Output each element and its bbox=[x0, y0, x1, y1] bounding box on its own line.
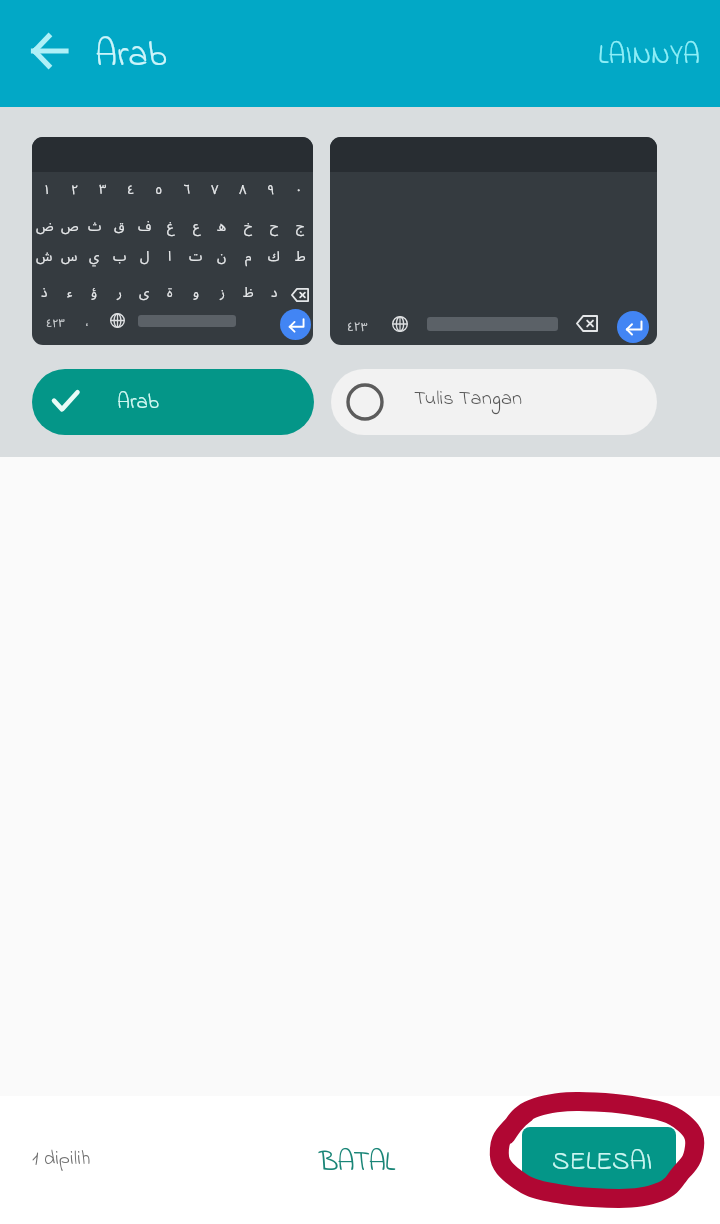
staticText: Arab bbox=[95, 30, 167, 83]
staticText: خ bbox=[244, 212, 253, 241]
staticText: ف bbox=[138, 212, 152, 241]
staticText: ٤ bbox=[127, 176, 135, 203]
staticText: ٤٢٣ bbox=[46, 312, 65, 335]
staticText: ٦ bbox=[183, 176, 191, 203]
staticText: BATAL bbox=[319, 1142, 394, 1184]
staticText: ٧ bbox=[211, 176, 219, 203]
staticText: ش bbox=[36, 242, 53, 271]
button[interactable]: SELESAI bbox=[522, 1127, 676, 1191]
staticText: ع bbox=[193, 212, 200, 241]
button[interactable]: Back bbox=[16, 18, 82, 84]
staticText: ك bbox=[268, 242, 280, 271]
staticText: ء bbox=[67, 278, 73, 307]
staticText: ل bbox=[140, 242, 150, 271]
staticText: ه bbox=[217, 212, 227, 241]
staticText: ى bbox=[139, 278, 150, 307]
staticText: ح bbox=[270, 212, 279, 241]
staticText: د bbox=[271, 278, 278, 307]
staticText: ث bbox=[88, 212, 102, 241]
staticText: ط bbox=[295, 242, 306, 271]
staticText: LAINNYA bbox=[598, 36, 701, 77]
staticText: ٢ bbox=[71, 176, 79, 203]
staticText: ٣ bbox=[99, 176, 107, 203]
staticText: م bbox=[245, 242, 252, 271]
staticText: ظ bbox=[243, 278, 254, 307]
staticText: ٥ bbox=[155, 176, 163, 203]
staticText: ، bbox=[85, 310, 89, 335]
staticText: ٤٢٣ bbox=[347, 315, 368, 340]
staticText: ن bbox=[217, 242, 227, 271]
button[interactable]: Arabic keyboard layout preview bbox=[32, 137, 313, 345]
staticText: ص bbox=[61, 212, 79, 241]
staticText: Tulis Tangan bbox=[414, 384, 523, 414]
button[interactable]: Arab bbox=[32, 369, 314, 435]
staticText: ٠ bbox=[295, 176, 303, 203]
staticText: ا bbox=[168, 242, 172, 271]
button[interactable]: BATAL bbox=[305, 1134, 408, 1192]
staticText: ي bbox=[89, 242, 100, 271]
staticText: ق bbox=[114, 212, 125, 241]
staticText: Arab bbox=[117, 388, 159, 419]
staticText: غ bbox=[167, 212, 174, 241]
staticText: 1 dipilih bbox=[32, 1144, 91, 1174]
button[interactable]: LAINNYA bbox=[586, 23, 713, 84]
staticText: SELESAI bbox=[552, 1143, 653, 1182]
staticText: ت bbox=[189, 242, 203, 271]
staticText: ر bbox=[117, 278, 122, 307]
staticText: ب bbox=[113, 242, 127, 271]
staticText: ١ bbox=[43, 176, 51, 203]
button[interactable]: Handwriting keyboard preview bbox=[330, 137, 657, 345]
staticText: ض bbox=[36, 212, 54, 241]
staticText: ز bbox=[220, 278, 225, 307]
staticText: ٨ bbox=[239, 176, 247, 203]
staticText: و bbox=[193, 278, 200, 307]
staticText: ذ bbox=[41, 278, 48, 307]
button[interactable]: Tulis Tangan bbox=[331, 369, 657, 435]
staticText: ؤ bbox=[91, 278, 98, 307]
staticText: ة bbox=[167, 278, 173, 307]
staticText: ج bbox=[296, 212, 305, 241]
staticText: ٩ bbox=[267, 176, 275, 203]
staticText: س bbox=[61, 242, 78, 271]
